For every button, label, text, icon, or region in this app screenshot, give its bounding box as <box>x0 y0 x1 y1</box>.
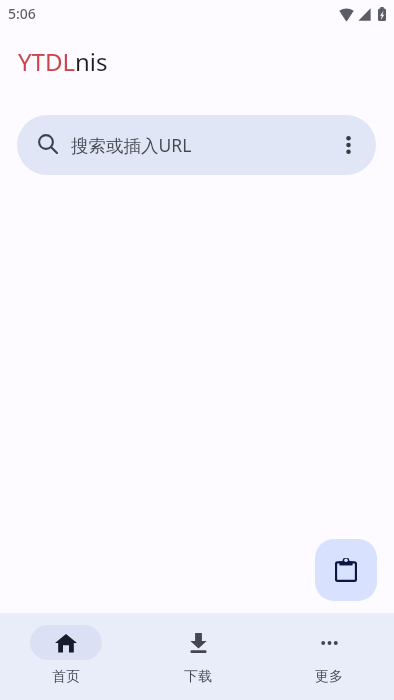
staticText: 更多 <box>315 668 343 686</box>
button[interactable]: 下载 <box>132 613 263 686</box>
button[interactable]: 更多 <box>263 613 394 686</box>
staticText: 5:06 <box>8 4 36 23</box>
button[interactable]: More options <box>325 122 371 168</box>
staticText: YTDLnis <box>18 45 108 78</box>
staticText: 首页 <box>52 668 80 686</box>
button[interactable]: Paste link from clipboard <box>315 539 377 601</box>
button[interactable]: 搜索或插入URL <box>17 115 376 175</box>
staticText: 搜索或插入URL <box>71 133 192 157</box>
staticText: 下载 <box>184 668 212 686</box>
button[interactable]: 首页 <box>0 613 132 686</box>
